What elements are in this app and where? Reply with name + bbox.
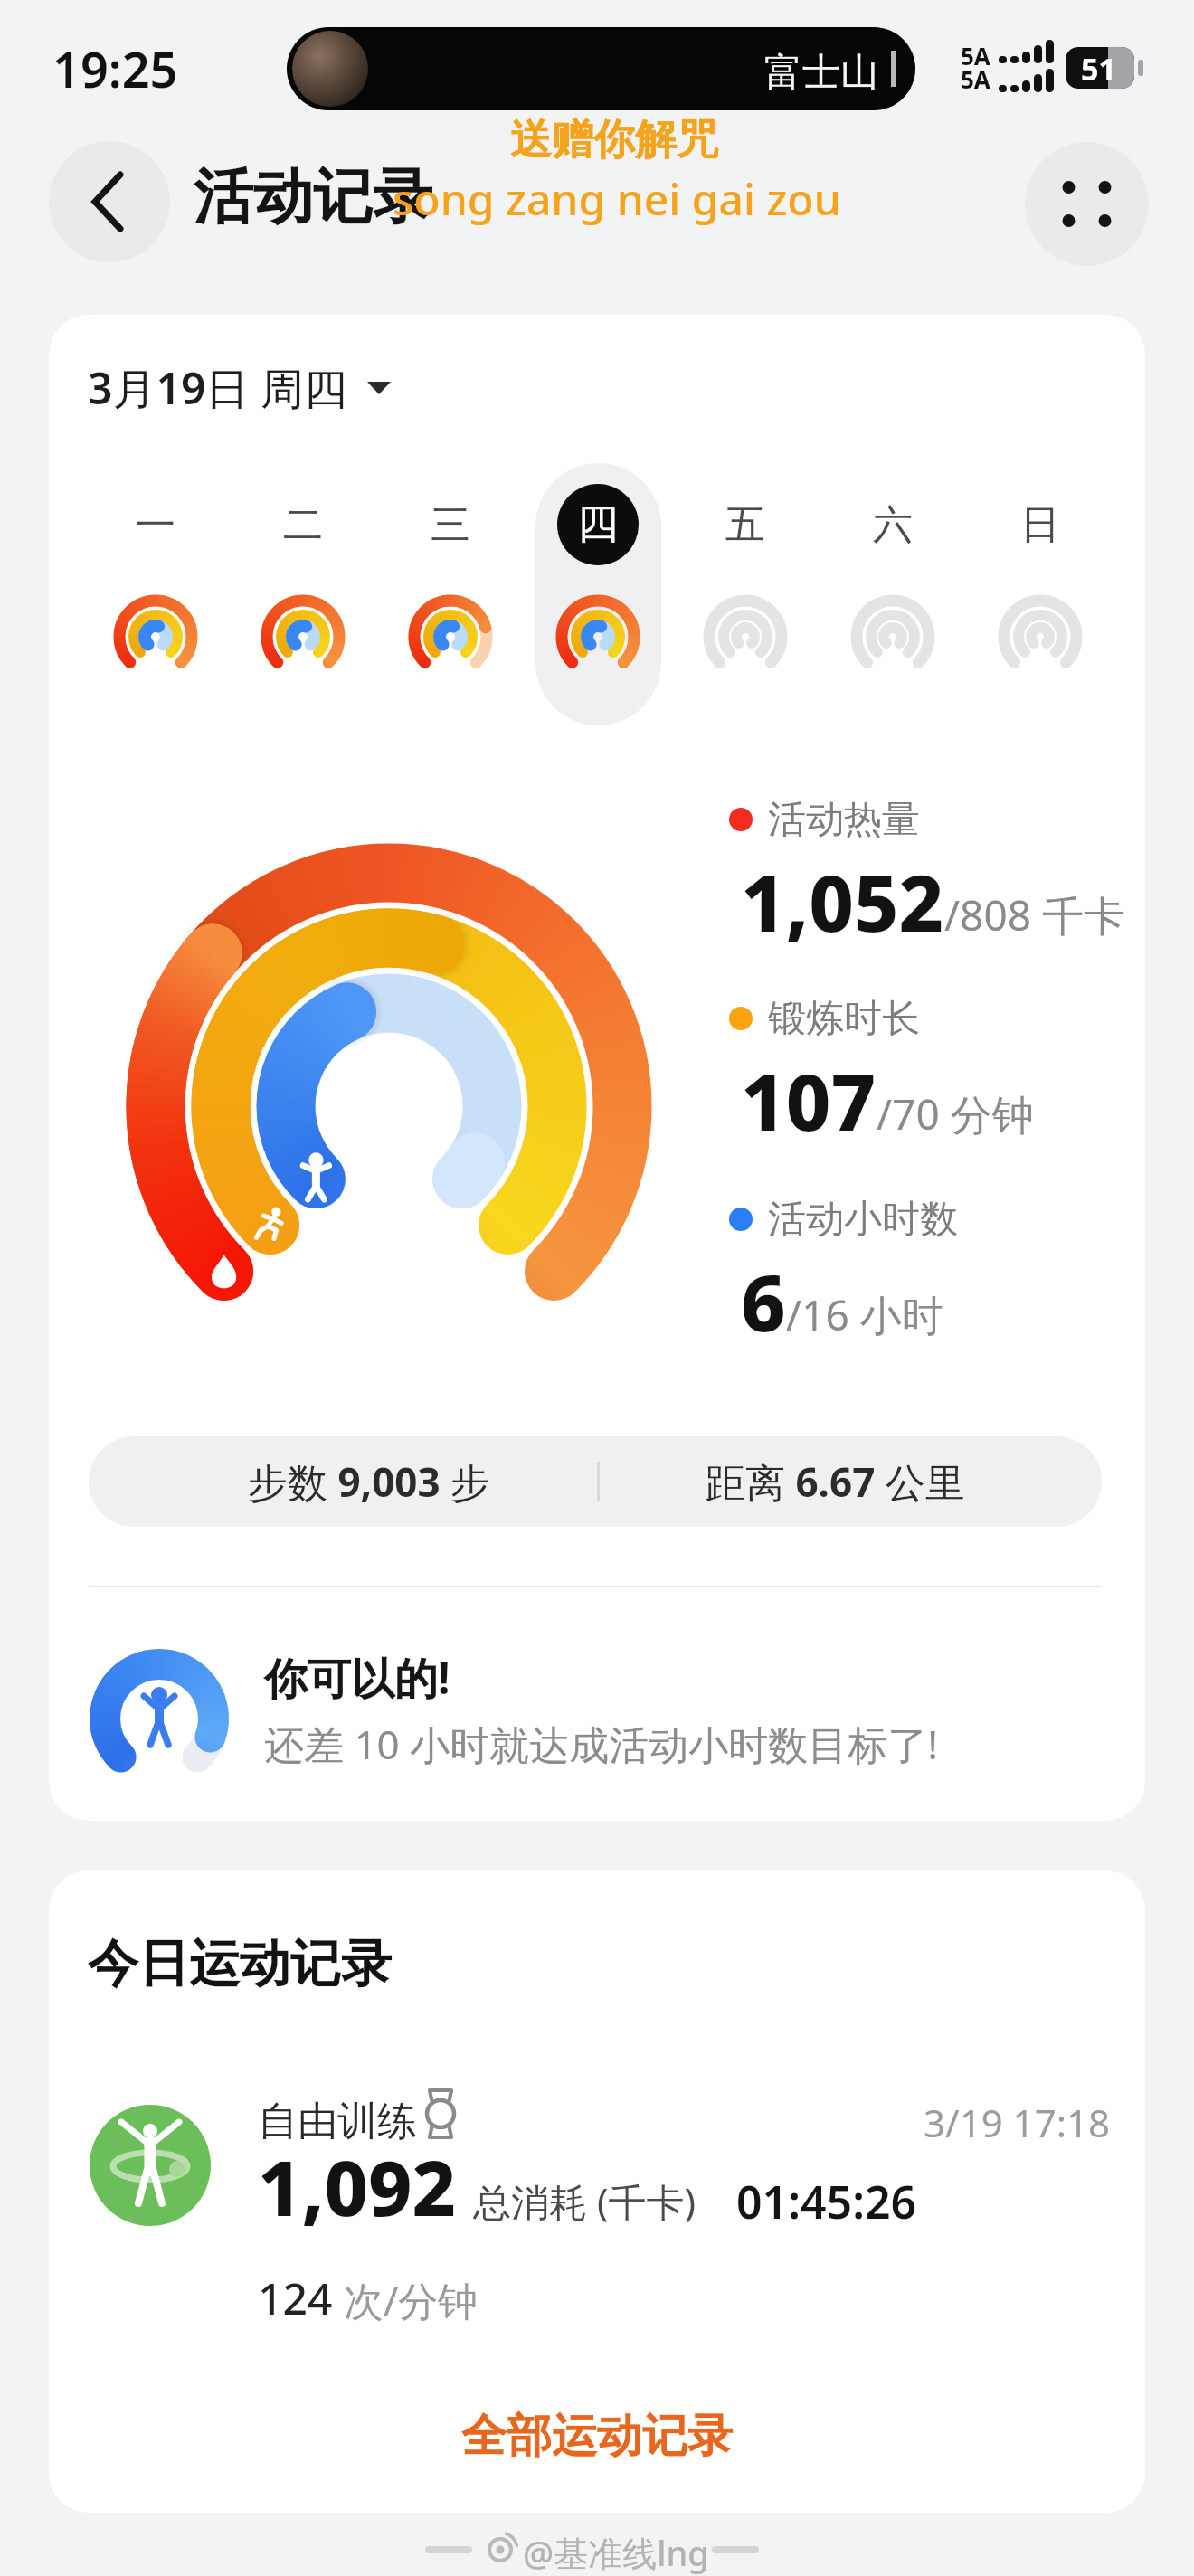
- staticText: 五: [725, 500, 765, 550]
- staticText: @基准线lng: [523, 2529, 709, 2576]
- button[interactable]: [49, 141, 170, 262]
- button[interactable]: 富士山: [287, 27, 915, 110]
- staticText: 5A: [961, 63, 990, 95]
- staticText: 三: [431, 500, 470, 550]
- button[interactable]: 二: [262, 484, 344, 565]
- staticText: 1,052: [741, 848, 944, 954]
- staticText: 51: [1081, 48, 1116, 88]
- staticText: 还差 10 小时就达成活动小时数目标了!: [264, 1717, 939, 1771]
- staticText: 日: [1020, 500, 1060, 550]
- staticText: 活动小时数: [768, 1196, 958, 1244]
- button[interactable]: 3月19日 周四: [88, 358, 391, 418]
- staticText: 六: [873, 500, 913, 550]
- staticText: 1,092: [258, 2135, 457, 2238]
- staticText: 距离 6.67 公里: [706, 1454, 965, 1509]
- button[interactable]: 四: [557, 484, 639, 565]
- button[interactable]: 步数 9,003 步: [89, 1436, 1102, 1527]
- staticText: 富士山: [764, 49, 878, 97]
- staticText: 6: [741, 1248, 786, 1354]
- button[interactable]: 全部运动记录: [49, 2395, 1145, 2477]
- button[interactable]: 日: [1000, 484, 1081, 565]
- button[interactable]: 你可以的!: [49, 1608, 1145, 1789]
- staticText: 次/分钟: [344, 2273, 479, 2327]
- staticText: 活动记录: [194, 159, 432, 234]
- button[interactable]: 六: [852, 484, 933, 565]
- staticText: 自由训练: [258, 2097, 417, 2146]
- staticText: 19:25: [52, 35, 178, 102]
- staticText: /70 分钟: [877, 1085, 1034, 1142]
- staticText: 一: [136, 500, 175, 550]
- staticText: 总消耗 (千卡): [473, 2175, 696, 2227]
- staticText: /16 小时: [786, 1286, 943, 1343]
- staticText: 全部运动记录: [461, 2408, 733, 2465]
- button[interactable]: 三: [410, 484, 491, 565]
- staticText: 送赠你解咒: [510, 114, 718, 166]
- staticText: 锻炼时长: [768, 995, 920, 1043]
- staticText: 5A: [961, 40, 990, 71]
- staticText: /808 千卡: [944, 886, 1126, 943]
- button[interactable]: 一: [115, 484, 196, 565]
- staticText: 01:45:26: [736, 2171, 917, 2232]
- staticText: 四: [577, 498, 619, 551]
- staticText: 步数 9,003 步: [248, 1454, 491, 1509]
- button[interactable]: [1025, 142, 1149, 266]
- staticText: 3/19 17:18: [924, 2097, 1110, 2142]
- staticText: 107: [741, 1047, 877, 1153]
- button[interactable]: 自由训练: [49, 2088, 1145, 2341]
- staticText: song zang nei gai zou: [393, 169, 841, 227]
- staticText: 124: [258, 2268, 344, 2327]
- staticText: 你可以的!: [264, 1648, 450, 1708]
- staticText: 活动热量: [768, 796, 920, 844]
- button[interactable]: 五: [705, 484, 786, 565]
- staticText: 3月19日 周四: [88, 358, 347, 418]
- staticText: 今日运动记录: [88, 1932, 392, 1996]
- staticText: 二: [283, 500, 323, 550]
